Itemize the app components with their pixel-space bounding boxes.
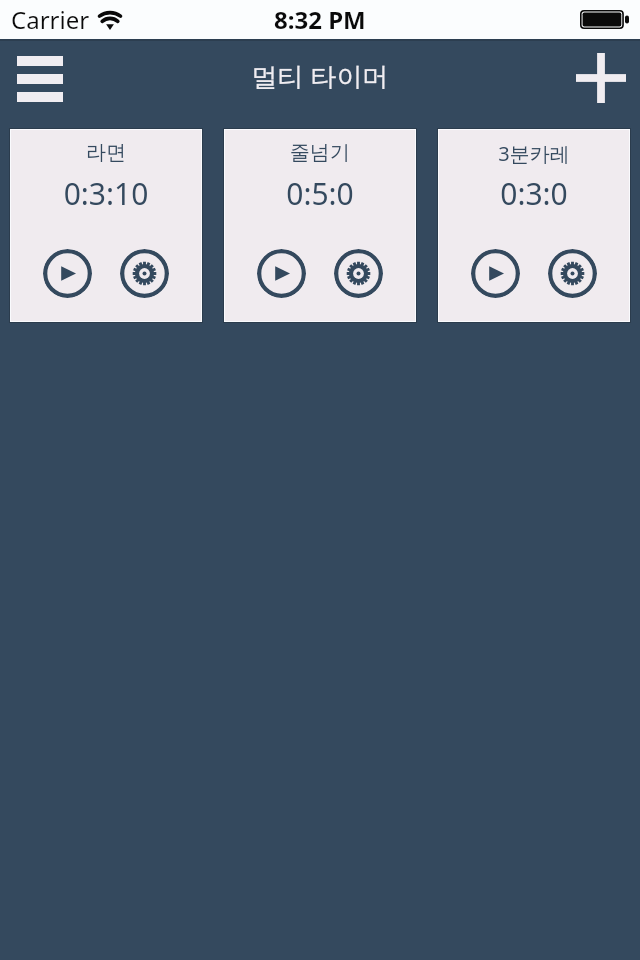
staticText: 0:3:0 (439, 173, 629, 214)
button[interactable]: Start 줄넘기 (257, 249, 306, 298)
button[interactable]: 라면 (11, 130, 201, 321)
button[interactable]: Settings 3분카레 (548, 249, 597, 298)
button[interactable]: Settings 줄넘기 (334, 249, 383, 298)
staticText: 0:3:10 (11, 173, 201, 214)
staticText: 0:5:0 (225, 173, 415, 214)
staticText: 줄넘기 (225, 140, 415, 165)
button[interactable]: Menu (5, 48, 75, 109)
button[interactable]: Add timer (573, 50, 629, 106)
staticText: 라면 (11, 140, 201, 165)
button[interactable]: Settings 라면 (120, 249, 169, 298)
staticText: Carrier (11, 3, 90, 36)
button[interactable]: 3분카레 (439, 130, 629, 321)
button[interactable]: Start 라면 (43, 249, 92, 298)
staticText: 8:32 PM (274, 3, 366, 36)
button[interactable]: Start 3분카레 (471, 249, 520, 298)
staticText: 멀티 타이머 (0, 58, 640, 94)
staticText: 3분카레 (439, 140, 629, 167)
button[interactable]: 줄넘기 (225, 130, 415, 321)
